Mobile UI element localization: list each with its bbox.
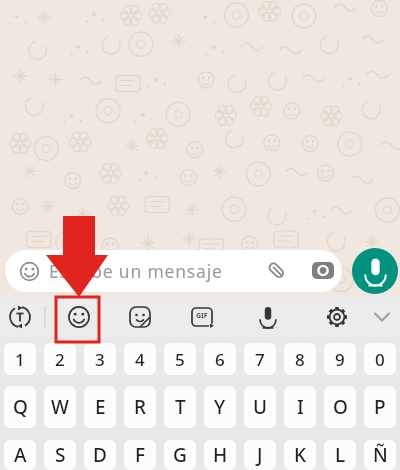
button[interactable]: [19, 261, 40, 282]
staticText: U: [253, 394, 268, 420]
button[interactable]: O: [324, 386, 356, 428]
staticText: 9: [335, 348, 345, 371]
button[interactable]: U: [244, 386, 276, 428]
button[interactable]: [312, 260, 334, 282]
staticText: W: [51, 394, 69, 420]
staticText: 1: [15, 348, 25, 371]
staticText: F: [135, 442, 146, 468]
button[interactable]: P: [364, 386, 396, 428]
button[interactable]: D: [84, 440, 116, 470]
staticText: 2: [55, 348, 65, 371]
button[interactable]: K: [284, 440, 316, 470]
staticText: Q: [13, 394, 28, 420]
button[interactable]: [120, 297, 160, 337]
staticText: 6: [215, 348, 225, 371]
staticText: 3: [95, 348, 105, 371]
staticText: I: [297, 394, 304, 420]
button[interactable]: Q: [4, 386, 36, 428]
staticText: 8: [295, 348, 305, 371]
button[interactable]: [352, 248, 398, 294]
staticText: 4: [135, 348, 145, 371]
staticText: S: [55, 442, 66, 468]
button[interactable]: R: [124, 386, 156, 428]
staticText: 0: [375, 348, 385, 371]
button[interactable]: [0, 297, 40, 337]
staticText: P: [374, 394, 386, 420]
staticText: K: [294, 442, 307, 468]
staticText: Ñ: [373, 442, 388, 468]
button[interactable]: 3: [84, 343, 116, 375]
button[interactable]: Escribe un mensaje: [5, 250, 342, 292]
staticText: J: [257, 442, 263, 468]
button[interactable]: 4: [124, 343, 156, 375]
button[interactable]: GIF: [182, 297, 222, 337]
staticText: T: [175, 394, 186, 420]
button[interactable]: H: [204, 440, 236, 470]
button[interactable]: J: [244, 440, 276, 470]
button[interactable]: [248, 297, 288, 337]
button[interactable]: 0: [364, 343, 396, 375]
button[interactable]: A: [4, 440, 36, 470]
staticText: 7: [255, 348, 265, 371]
staticText: L: [335, 442, 346, 468]
staticText: H: [213, 442, 228, 468]
staticText: Escribe un mensaje: [49, 259, 223, 283]
button[interactable]: 7: [244, 343, 276, 375]
button[interactable]: S: [44, 440, 76, 470]
staticText: A: [14, 442, 27, 468]
staticText: G: [173, 442, 187, 468]
button[interactable]: I: [284, 386, 316, 428]
button[interactable]: 5: [164, 343, 196, 375]
button[interactable]: 6: [204, 343, 236, 375]
button[interactable]: T: [164, 386, 196, 428]
staticText: 5: [175, 348, 185, 371]
staticText: GIF: [196, 311, 208, 321]
button[interactable]: G: [164, 440, 196, 470]
staticText: D: [93, 442, 107, 468]
button[interactable]: 2: [44, 343, 76, 375]
staticText: O: [333, 394, 348, 420]
button[interactable]: 1: [4, 343, 36, 375]
staticText: R: [134, 394, 147, 420]
staticText: E: [95, 394, 106, 420]
button[interactable]: 8: [284, 343, 316, 375]
button[interactable]: [59, 297, 99, 337]
button[interactable]: Ñ: [364, 440, 396, 470]
button[interactable]: [266, 260, 288, 282]
button[interactable]: 9: [324, 343, 356, 375]
button[interactable]: W: [44, 386, 76, 428]
button[interactable]: L: [324, 440, 356, 470]
button[interactable]: E: [84, 386, 116, 428]
button[interactable]: [362, 297, 400, 337]
staticText: Y: [214, 394, 226, 420]
button[interactable]: F: [124, 440, 156, 470]
button[interactable]: [317, 297, 357, 337]
button[interactable]: Y: [204, 386, 236, 428]
